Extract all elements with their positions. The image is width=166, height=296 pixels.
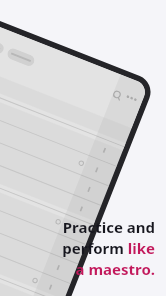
button[interactable]: Practice and perform like a maestro. (0, 217, 155, 280)
other: Tablet app preview (0, 0, 166, 296)
staticText: Practice and perform like a maestro. (0, 217, 155, 280)
